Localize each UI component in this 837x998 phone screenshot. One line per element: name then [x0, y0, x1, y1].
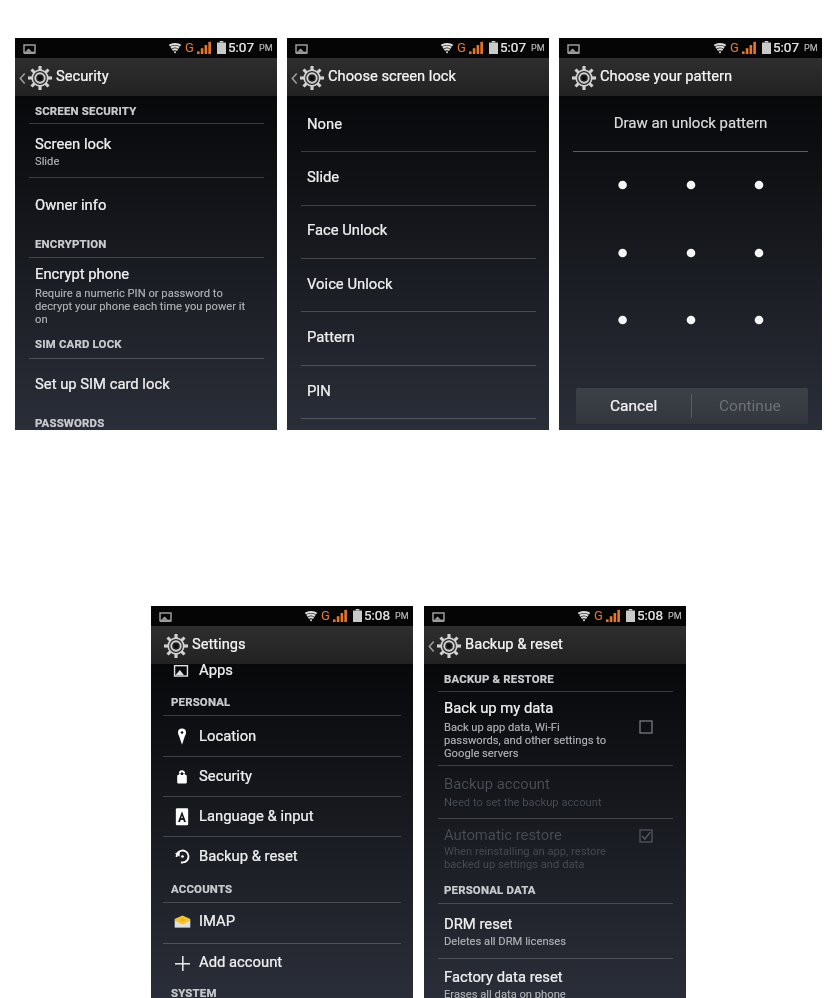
button[interactable]: Back [424, 626, 686, 664]
staticText: Screen lock [35, 135, 112, 152]
button[interactable] [424, 960, 686, 998]
staticText: Slide [307, 168, 340, 185]
staticText: Face Unlock [307, 221, 388, 238]
staticText: Factory data reset [444, 968, 563, 985]
button[interactable]: Cancel [576, 388, 691, 424]
staticText: IMAP [199, 912, 236, 929]
staticText: G [730, 40, 739, 55]
button[interactable] [287, 205, 549, 258]
staticText: Continue [719, 397, 781, 415]
button[interactable] [287, 258, 549, 311]
staticText: 5:08 [364, 607, 391, 623]
staticText: Back up app data, Wi-Fi passwords, and o… [444, 721, 607, 760]
staticText: Settings [192, 635, 246, 652]
button[interactable] [424, 905, 686, 957]
staticText: ENCRYPTION [35, 237, 107, 250]
staticText: PM [668, 611, 682, 622]
button[interactable]: Choose your pattern [559, 58, 822, 96]
staticText: Require a numeric PIN or password to dec… [35, 287, 246, 326]
staticText: Deletes all DRM licenses [444, 935, 567, 948]
other: Back [19, 73, 25, 84]
staticText: PM [395, 611, 409, 622]
button[interactable] [151, 912, 413, 932]
staticText: Choose your pattern [600, 67, 733, 84]
staticText: SCREEN SECURITY [35, 104, 137, 117]
button[interactable] [151, 727, 413, 747]
staticText: Apps [199, 664, 233, 678]
button[interactable] [15, 96, 277, 150]
staticText: Security [56, 67, 109, 84]
staticText: Need to set the backup account [444, 796, 602, 809]
staticText: Backup account [444, 775, 550, 792]
button[interactable] [424, 766, 686, 818]
staticText: G [321, 608, 330, 623]
staticText: When reinstalling an app, restore backed… [444, 845, 607, 871]
button[interactable] [287, 151, 549, 204]
staticText: 5:07 [500, 39, 527, 55]
staticText: Automatic restore [444, 826, 562, 843]
staticText: PERSONAL [171, 695, 231, 708]
staticText: Voice Unlock [307, 275, 393, 292]
button[interactable] [15, 150, 277, 204]
staticText: G [594, 608, 603, 623]
staticText: 5:07 [228, 39, 255, 55]
button[interactable]: Settings [151, 626, 413, 664]
button[interactable] [151, 767, 413, 787]
staticText: Slide [35, 155, 60, 168]
button[interactable] [424, 692, 686, 764]
staticText: Add account [199, 953, 283, 970]
button[interactable] [151, 953, 413, 973]
staticText: Owner info [35, 196, 107, 213]
staticText: BACKUP & RESTORE [444, 672, 554, 685]
staticText: Location [199, 727, 257, 744]
button[interactable]: Back [15, 58, 277, 96]
button[interactable] [424, 820, 686, 890]
button[interactable]: Back [287, 58, 549, 96]
button[interactable] [287, 98, 549, 151]
staticText: DRM reset [444, 915, 513, 932]
staticText: SYSTEM [171, 986, 217, 998]
other: Back [428, 641, 434, 652]
staticText: PIN [307, 382, 331, 399]
staticText: Encrypt phone [35, 265, 130, 282]
staticText: SIM CARD LOCK [35, 337, 122, 350]
staticText: PM [531, 43, 545, 54]
staticText: Draw an unlock pattern [559, 114, 822, 132]
button[interactable] [15, 257, 277, 358]
button[interactable] [15, 358, 277, 418]
other: Back [291, 73, 297, 84]
staticText: Backup & reset [465, 635, 563, 652]
staticText: Security [199, 767, 252, 784]
staticText: None [307, 115, 343, 132]
button[interactable] [15, 202, 277, 256]
staticText: 5:07 [773, 39, 800, 55]
staticText: Set up SIM card lock [35, 375, 170, 392]
staticText: PM [804, 43, 818, 54]
staticText: Cancel [610, 397, 658, 415]
staticText: 5:08 [637, 607, 664, 623]
staticText: Back up my data [444, 699, 554, 716]
staticText: G [185, 40, 194, 55]
staticText: Backup & reset [199, 847, 298, 864]
button[interactable] [151, 847, 413, 867]
button[interactable] [287, 365, 549, 418]
staticText: Pattern [307, 328, 356, 345]
staticText: Erases all data on phone [444, 988, 566, 998]
staticText: Choose screen lock [328, 67, 456, 84]
staticText: PASSWORDS [35, 416, 105, 429]
button[interactable] [151, 807, 413, 827]
staticText: PERSONAL DATA [444, 883, 536, 896]
button[interactable]: Continue [692, 388, 808, 424]
staticText: G [457, 40, 466, 55]
staticText: PM [259, 43, 273, 54]
staticText: ACCOUNTS [171, 882, 233, 895]
button[interactable] [287, 311, 549, 364]
staticText: Language & input [199, 807, 314, 824]
